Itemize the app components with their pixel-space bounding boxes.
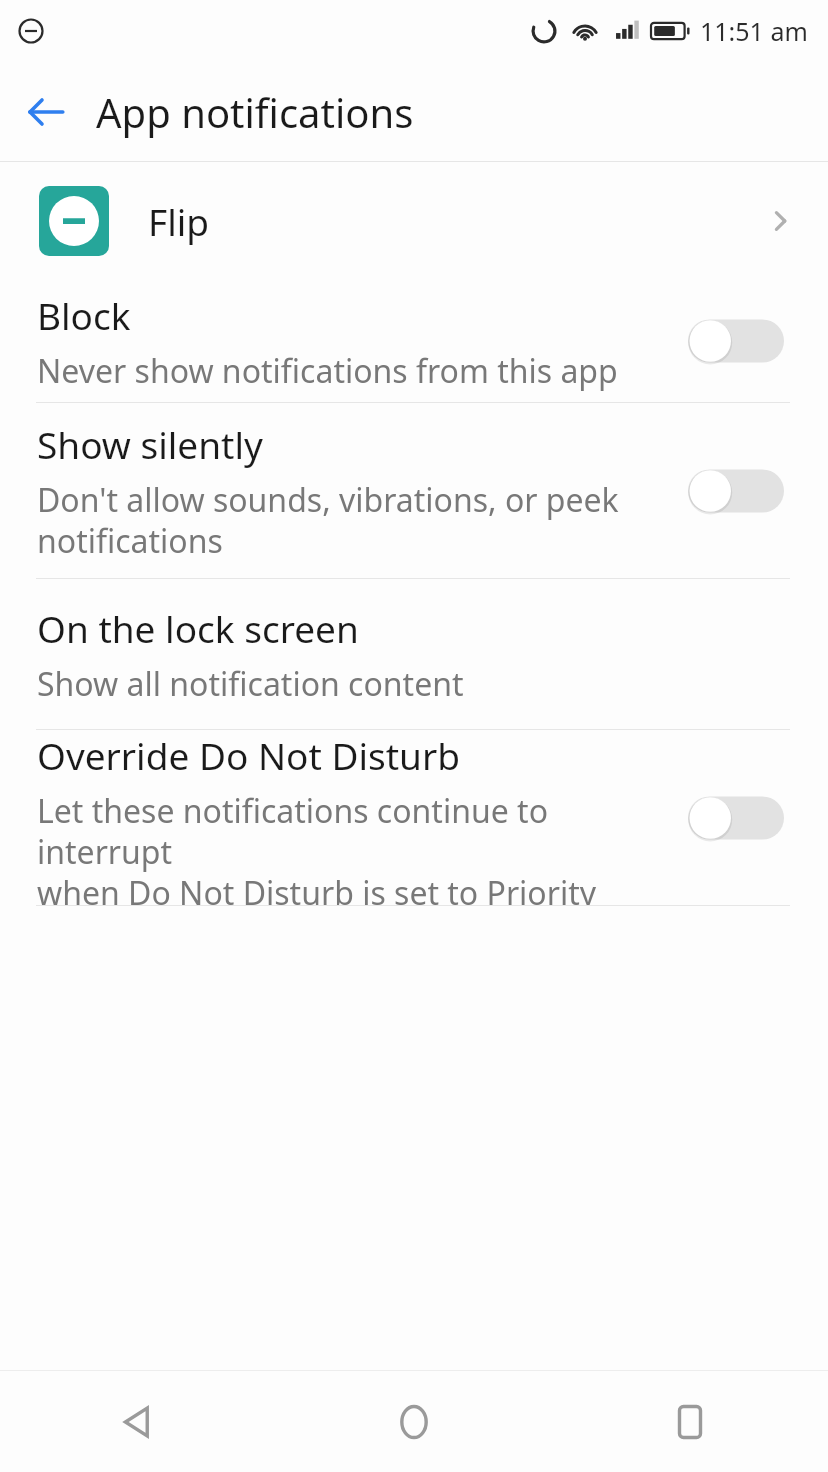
- button[interactable]: Recent apps: [552, 1371, 828, 1472]
- button[interactable]: Back: [0, 1371, 276, 1472]
- staticText: Flip: [148, 196, 210, 246]
- button[interactable]: Override Do Not Disturb: [0, 730, 828, 905]
- button[interactable]: Show silently: [0, 403, 828, 578]
- button[interactable]: On the lock screen: [0, 579, 828, 729]
- button[interactable]: Back: [18, 84, 74, 140]
- button[interactable]: Home: [276, 1371, 552, 1472]
- staticText: Show silently: [37, 419, 263, 469]
- staticText: 11:51 am: [700, 14, 808, 48]
- staticText: Let these notifications continue to inte…: [37, 789, 672, 905]
- staticText: Show all notification content: [37, 662, 464, 706]
- button[interactable]: Block toggle: [688, 311, 784, 371]
- button[interactable]: Block: [0, 280, 828, 402]
- staticText: Override Do Not Disturb: [37, 730, 460, 780]
- staticText: App notifications: [96, 85, 414, 139]
- other: Open app info: [756, 197, 804, 245]
- staticText: Block: [37, 290, 131, 340]
- staticText: On the lock screen: [37, 603, 359, 653]
- button[interactable]: Flip: [0, 162, 828, 280]
- staticText: Never show notifications from this app: [37, 349, 618, 393]
- button[interactable]: Override Do Not Disturb toggle: [688, 788, 784, 848]
- button[interactable]: Show silently toggle: [688, 461, 784, 521]
- staticText: Don't allow sounds, vibrations, or peek …: [37, 478, 619, 563]
